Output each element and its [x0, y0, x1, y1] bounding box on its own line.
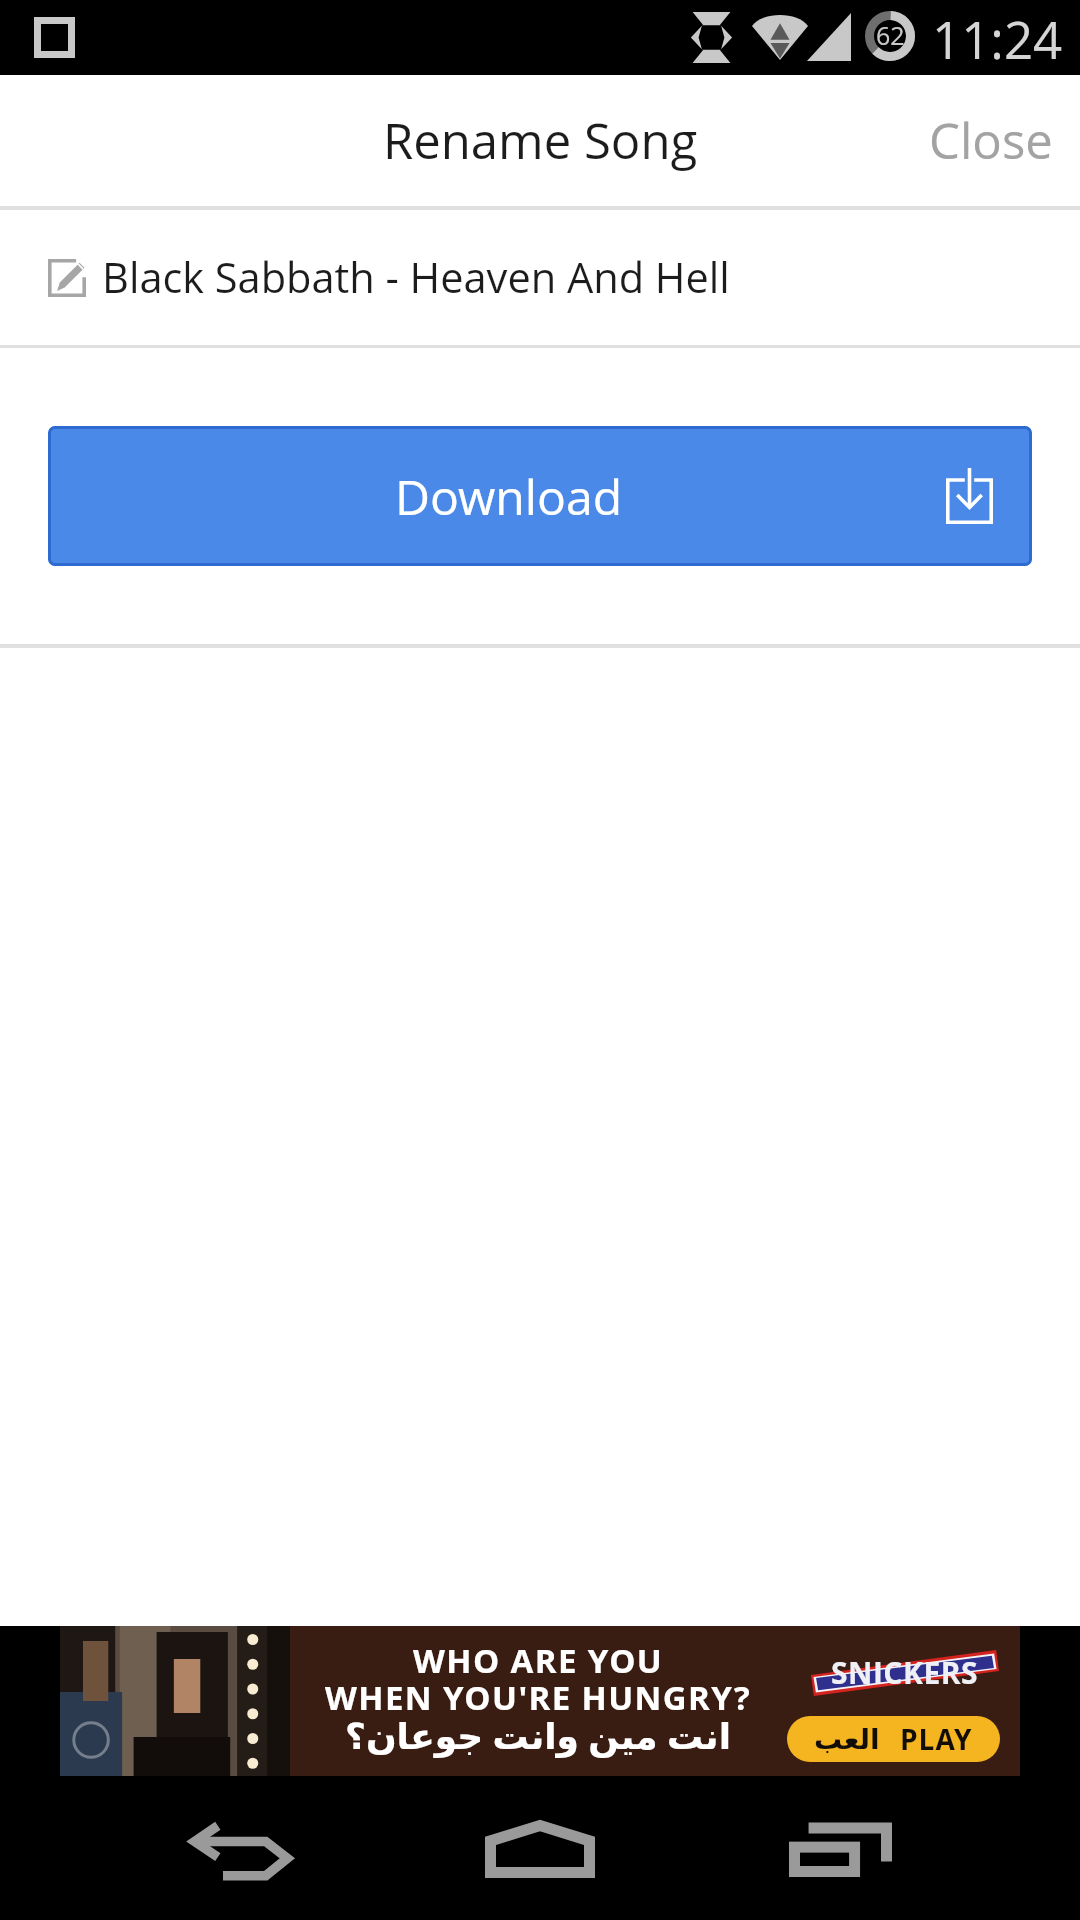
staticText: SNICKERS	[831, 1652, 979, 1693]
staticText: انت مين وانت جوعان؟	[345, 1711, 731, 1760]
staticText: PLAY	[900, 1720, 973, 1758]
staticText: Download	[395, 464, 623, 529]
staticText: Black Sabbath - Heaven And Hell	[102, 249, 730, 306]
staticText: 11:24	[932, 4, 1063, 73]
staticText: WHEN YOU'RE HUNGRY?	[325, 1675, 752, 1720]
button[interactable]: Recent apps	[740, 1776, 940, 1920]
button[interactable]: Close	[908, 75, 1080, 206]
button[interactable]: Back	[140, 1776, 340, 1920]
button[interactable]: العب	[787, 1716, 1000, 1762]
button[interactable]: Home	[440, 1776, 640, 1920]
button[interactable]: Black Sabbath - Heaven And Hell	[0, 210, 1080, 345]
staticText: 62	[876, 18, 905, 52]
staticText: Rename Song	[383, 107, 698, 174]
button[interactable]: Download	[48, 426, 1032, 566]
staticText: Close	[929, 107, 1053, 174]
button[interactable]: WHO ARE YOU	[60, 1626, 1020, 1776]
staticText: WHO ARE YOU	[413, 1638, 664, 1683]
staticText: العب	[814, 1723, 880, 1756]
